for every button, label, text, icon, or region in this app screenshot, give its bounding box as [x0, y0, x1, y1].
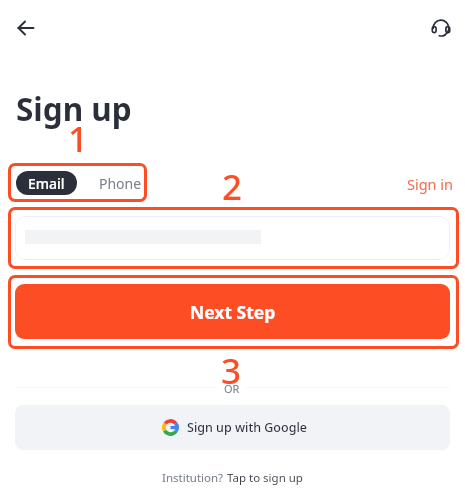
button[interactable]: Sign up with Google: [15, 405, 450, 450]
staticText: Sign up with Google: [187, 419, 307, 436]
staticText: Next Step: [190, 300, 276, 324]
staticText: 3: [221, 347, 242, 395]
staticText: 2: [222, 163, 243, 211]
staticText: Sign up: [16, 87, 132, 130]
staticText: Tap to sign up: [227, 470, 303, 486]
staticText: Sign in: [407, 174, 454, 194]
button[interactable]: [15, 216, 450, 260]
button[interactable]: Tap to sign up: [227, 470, 303, 486]
staticText: OR: [224, 381, 240, 396]
staticText: 1: [68, 115, 89, 163]
staticText: Institution?: [162, 470, 227, 486]
button[interactable]: Next Step: [15, 284, 450, 339]
button[interactable]: Support: [426, 13, 456, 43]
staticText: Phone: [99, 174, 142, 193]
button[interactable]: Back: [11, 13, 41, 43]
button[interactable]: Sign in: [403, 170, 458, 198]
button[interactable]: Email: [16, 171, 77, 195]
button[interactable]: Phone: [77, 171, 152, 195]
staticText: Email: [28, 174, 65, 193]
